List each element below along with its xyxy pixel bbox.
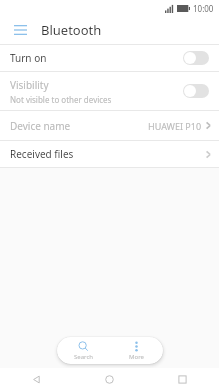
staticText: Received files: [10, 147, 206, 161]
staticText: Device name: [10, 119, 148, 133]
button[interactable]: Toggle: [183, 84, 209, 98]
button[interactable]: Device name: [0, 111, 219, 140]
staticText: 10:00: [193, 3, 214, 14]
staticText: HUAWEI P10: [148, 120, 202, 132]
staticText: Visibility: [10, 78, 49, 92]
staticText: Search: [74, 353, 93, 361]
staticText: Not visible to other devices: [10, 94, 112, 105]
button[interactable]: Search: [57, 337, 110, 364]
button[interactable]: Recent apps: [146, 368, 219, 390]
button[interactable]: Menu: [8, 18, 32, 42]
staticText: Turn on: [10, 51, 47, 65]
button[interactable]: More options: [110, 337, 163, 364]
button[interactable]: Toggle: [183, 51, 209, 65]
button[interactable]: Visibility: [0, 72, 219, 110]
staticText: More: [129, 353, 144, 361]
button[interactable]: Turn on: [0, 45, 219, 71]
button[interactable]: Home: [73, 368, 146, 390]
staticText: Bluetooth: [41, 21, 102, 39]
button[interactable]: Back: [0, 368, 73, 390]
button[interactable]: Received files: [0, 141, 219, 167]
